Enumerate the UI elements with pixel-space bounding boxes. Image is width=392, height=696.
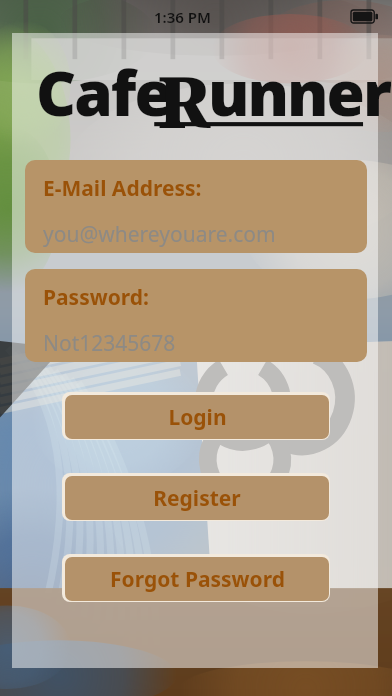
staticText: Login: [168, 403, 227, 432]
button[interactable]: Password:: [25, 269, 367, 362]
staticText: Register: [153, 484, 241, 513]
staticText: Password:: [43, 283, 149, 312]
staticText: unner: [208, 50, 391, 132]
staticText: 1:36 PM: [154, 7, 211, 27]
button[interactable]: Register: [62, 473, 330, 521]
button[interactable]: Login: [62, 392, 330, 440]
staticText: Not12345678: [43, 329, 176, 358]
staticText: Cafe: [36, 50, 171, 132]
staticText: Forgot Password: [110, 565, 285, 594]
staticText: you@whereyouare.com: [43, 220, 276, 249]
staticText: E-Mail Address:: [43, 174, 202, 203]
button[interactable]: E-Mail Address:: [25, 160, 367, 253]
button[interactable]: Forgot Password: [62, 554, 330, 602]
other: Battery: [351, 10, 378, 23]
staticText: R: [158, 53, 211, 135]
